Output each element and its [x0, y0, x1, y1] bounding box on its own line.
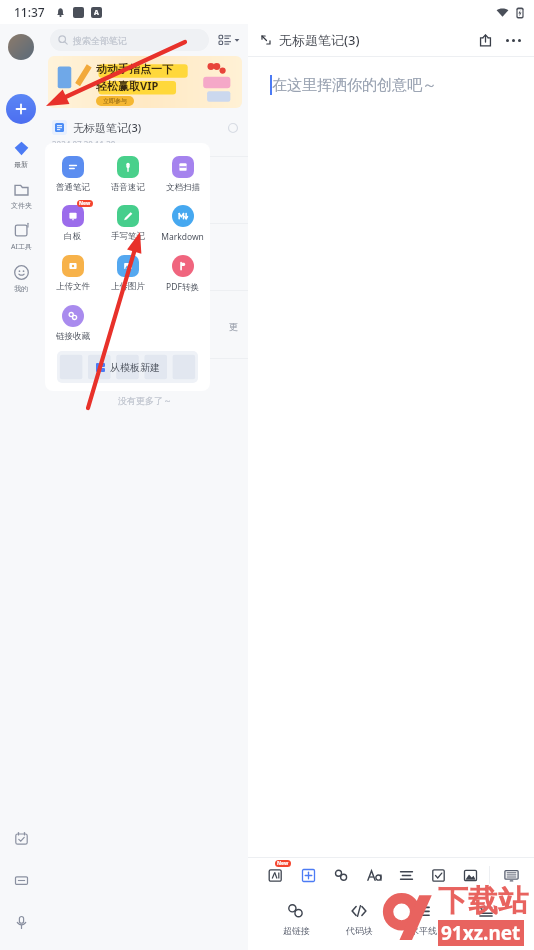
staticText: 引用 [477, 925, 495, 936]
staticText: 轻松赢取VIP [96, 78, 159, 93]
staticText: 11:37 [14, 4, 45, 20]
staticText: 语音速记 [111, 182, 145, 193]
button[interactable]: 搜索全部笔记 [50, 29, 209, 51]
button[interactable]: 代码块 [331, 902, 387, 936]
staticText: 普通笔记 [56, 182, 90, 193]
button[interactable]: 普通笔记 [45, 153, 100, 196]
button[interactable]: Voice [9, 910, 33, 934]
button[interactable]: 最新 [0, 140, 42, 169]
staticText: 91xz.net [441, 920, 521, 946]
button[interactable]: OCR [9, 868, 33, 892]
staticText: 无标题笔记(3) [73, 120, 142, 135]
button[interactable]: New [45, 202, 100, 245]
button[interactable]: Link [328, 862, 354, 888]
button[interactable]: Markdown [155, 202, 210, 246]
button[interactable]: 我的 [0, 264, 42, 293]
staticText: 我的 [14, 284, 28, 293]
staticText: A [94, 8, 99, 18]
button[interactable]: 超链接 [268, 902, 324, 936]
button[interactable]: Profile [8, 34, 34, 60]
button[interactable]: Share [474, 29, 496, 51]
button[interactable]: Expand [258, 32, 274, 48]
staticText: 超链接 [283, 925, 310, 936]
button[interactable]: Keyboard [498, 862, 524, 888]
staticText: 没有更多了～ [118, 395, 172, 406]
staticText: 从模板新建 [110, 361, 160, 374]
button[interactable]: 从模板新建 [57, 351, 198, 383]
staticText: 最新 [14, 160, 28, 169]
staticText: 链接收藏 [56, 331, 90, 342]
staticText: 文档扫描 [166, 182, 200, 193]
staticText: 立即参与 [103, 97, 127, 105]
button[interactable]: 文件夹 [0, 181, 42, 210]
staticText: 上传文件 [56, 281, 90, 292]
staticText: New [277, 860, 289, 867]
staticText: 动动手指点一下 [96, 62, 173, 76]
button[interactable]: Sort and filter [217, 32, 242, 48]
button[interactable]: 链接收藏 [45, 302, 100, 345]
staticText: New [79, 200, 91, 207]
staticText: 在这里挥洒你的创意吧～ [272, 76, 437, 95]
button[interactable]: 文档扫描 [155, 153, 210, 196]
staticText: 下载站 [438, 882, 528, 920]
staticText: 文件夹 [11, 201, 32, 210]
staticText: 更 [229, 321, 238, 332]
button[interactable]: New note [6, 94, 36, 124]
button[interactable]: Calendar [9, 826, 33, 850]
staticText: 无标题笔记(3) [279, 31, 360, 49]
button[interactable]: 立即参与 [103, 97, 127, 105]
button[interactable]: 上传文件 [45, 252, 100, 295]
button[interactable]: 语音速记 [100, 153, 155, 196]
button[interactable]: Font [361, 862, 387, 888]
button[interactable]: AI tools [262, 862, 288, 888]
staticText: PDF转换 [166, 281, 199, 293]
staticText: 上传图片 [111, 281, 145, 292]
button[interactable]: Insert [295, 862, 321, 888]
button[interactable]: 引用 [458, 902, 514, 936]
staticText: 代码块 [346, 925, 373, 936]
button[interactable]: AI工具 [0, 222, 42, 252]
button[interactable]: 上传图片 [100, 252, 155, 295]
staticText: 水平线 [410, 925, 437, 936]
button[interactable]: List [393, 862, 419, 888]
button[interactable]: Checklist [425, 862, 451, 888]
button[interactable]: Image [457, 862, 483, 888]
button[interactable]: PDF转换 [155, 252, 210, 296]
button[interactable]: 手写笔记 [100, 202, 155, 245]
button[interactable]: 水平线 [395, 902, 451, 936]
button[interactable]: More options [502, 29, 524, 51]
staticText: 白板 [64, 231, 81, 242]
staticText: 搜索全部笔记 [73, 35, 127, 46]
staticText: 手写笔记 [111, 231, 145, 242]
staticText: 2024.07.20 11:30 [52, 139, 116, 150]
button[interactable]: 无标题笔记(3) [42, 114, 248, 156]
staticText: AI工具 [11, 242, 32, 252]
staticText: Markdown [161, 231, 204, 243]
button[interactable]: 动动手指点一下 [48, 56, 242, 108]
